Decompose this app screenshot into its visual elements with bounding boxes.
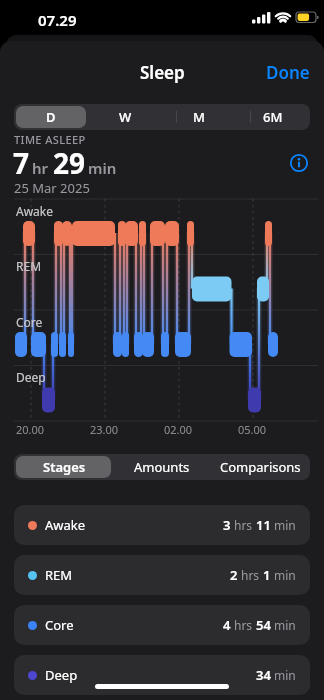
staticText: hr	[32, 158, 49, 178]
staticText: 34	[256, 666, 271, 684]
staticText: 05.00	[238, 422, 267, 437]
staticText: 29	[53, 144, 86, 182]
staticText: Deep	[45, 666, 78, 684]
button[interactable]: Core	[14, 605, 310, 645]
staticText: 11	[256, 516, 271, 534]
staticText: Done	[266, 61, 310, 84]
staticText: 7	[13, 144, 30, 182]
staticText: 1	[263, 566, 271, 584]
button[interactable]: Deep	[14, 655, 310, 695]
staticText: REM	[16, 258, 42, 274]
staticText: M	[193, 108, 205, 126]
staticText: 3	[223, 516, 231, 534]
button[interactable]: Amounts	[113, 454, 211, 480]
staticText: Comparisons	[220, 458, 301, 476]
staticText: Amounts	[134, 458, 190, 476]
staticText: D	[46, 108, 56, 126]
staticText: Deep	[16, 369, 46, 385]
staticText: 6M	[263, 108, 283, 126]
staticText: min	[274, 667, 296, 683]
staticText: 54	[256, 616, 271, 634]
button[interactable]	[289, 153, 309, 173]
staticText: hrs	[241, 567, 260, 583]
staticText: hrs	[234, 517, 253, 533]
staticText: min	[274, 517, 296, 533]
staticText: Awake	[16, 203, 54, 219]
staticText: Core	[16, 314, 43, 330]
staticText: hrs	[234, 617, 253, 633]
button[interactable]: REM	[14, 555, 310, 595]
staticText: 23.00	[90, 422, 119, 437]
staticText: Awake	[45, 516, 86, 534]
staticText: min	[274, 617, 296, 633]
button[interactable]: W	[88, 104, 162, 130]
staticText: 2	[230, 566, 238, 584]
staticText: REM	[45, 566, 73, 584]
staticText: 4	[223, 616, 231, 634]
button[interactable]: Stages	[15, 454, 113, 480]
staticText: 20.00	[16, 422, 45, 437]
staticText: Sleep	[140, 61, 185, 84]
button[interactable]: Done	[266, 61, 310, 84]
staticText: W	[119, 108, 132, 126]
staticText: min	[274, 567, 296, 583]
button[interactable]: Awake	[14, 505, 310, 545]
staticText: 25 Mar 2025	[14, 179, 90, 197]
button[interactable]: M	[162, 104, 236, 130]
staticText: min	[88, 158, 117, 178]
button[interactable]: D	[14, 104, 88, 130]
staticText: 07.29	[38, 10, 77, 30]
staticText: Core	[45, 616, 74, 634]
staticText: Stages	[43, 458, 86, 476]
staticText: 02.00	[164, 422, 193, 437]
button[interactable]: Comparisons	[211, 454, 309, 480]
button[interactable]: 6M	[236, 104, 310, 130]
staticText: TIME ASLEEP	[14, 132, 86, 147]
